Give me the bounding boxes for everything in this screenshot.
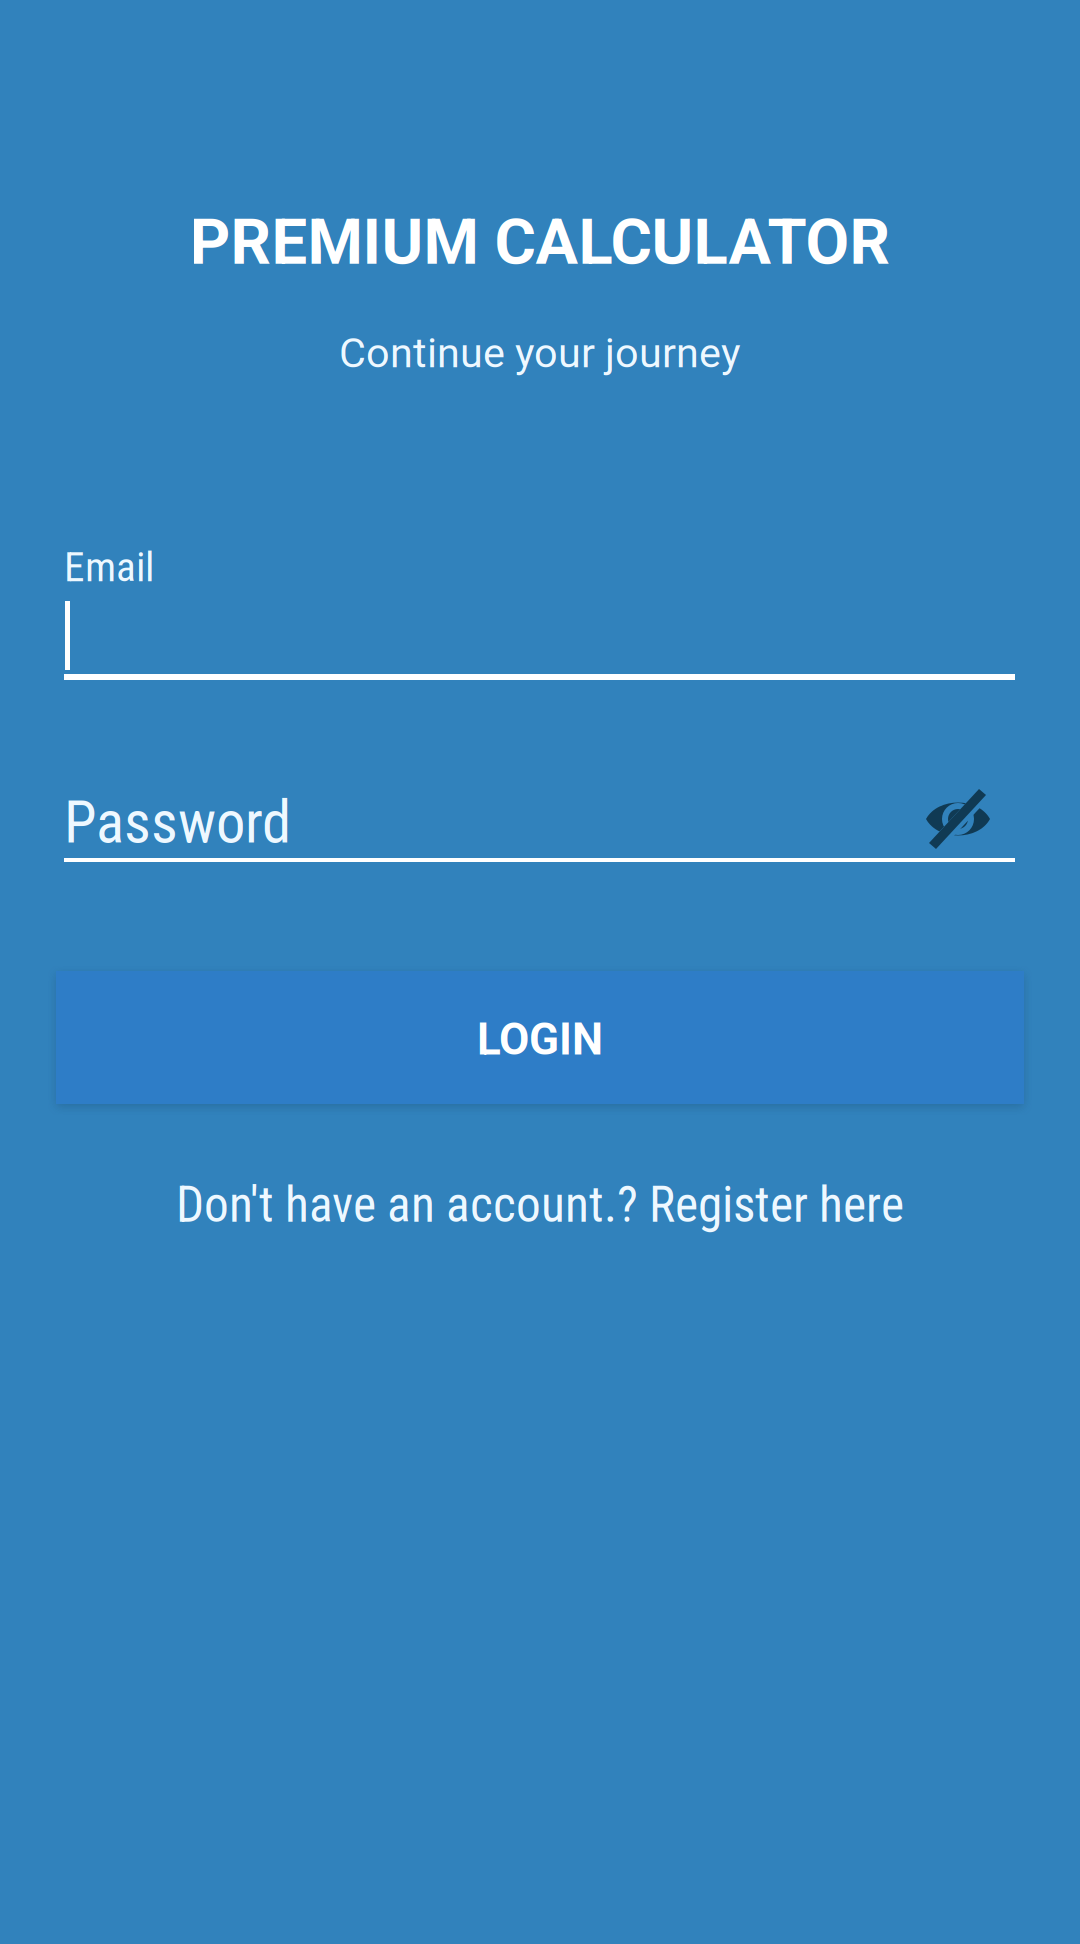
staticText: PREMIUM CALCULATOR bbox=[189, 205, 890, 279]
button[interactable]: Email bbox=[64, 543, 1015, 678]
button[interactable]: LOGIN bbox=[56, 971, 1024, 1104]
staticText: Email bbox=[64, 543, 154, 591]
staticText: Continue your journey bbox=[339, 329, 741, 377]
staticText: Password bbox=[64, 788, 291, 857]
staticText: LOGIN bbox=[477, 1014, 603, 1065]
button[interactable]: Don't have an account.? Register here bbox=[0, 1175, 1080, 1235]
button[interactable]: Show password bbox=[913, 779, 1003, 859]
button[interactable]: Password bbox=[64, 788, 1015, 862]
staticText: Don't have an account.? Register here bbox=[176, 1176, 904, 1234]
